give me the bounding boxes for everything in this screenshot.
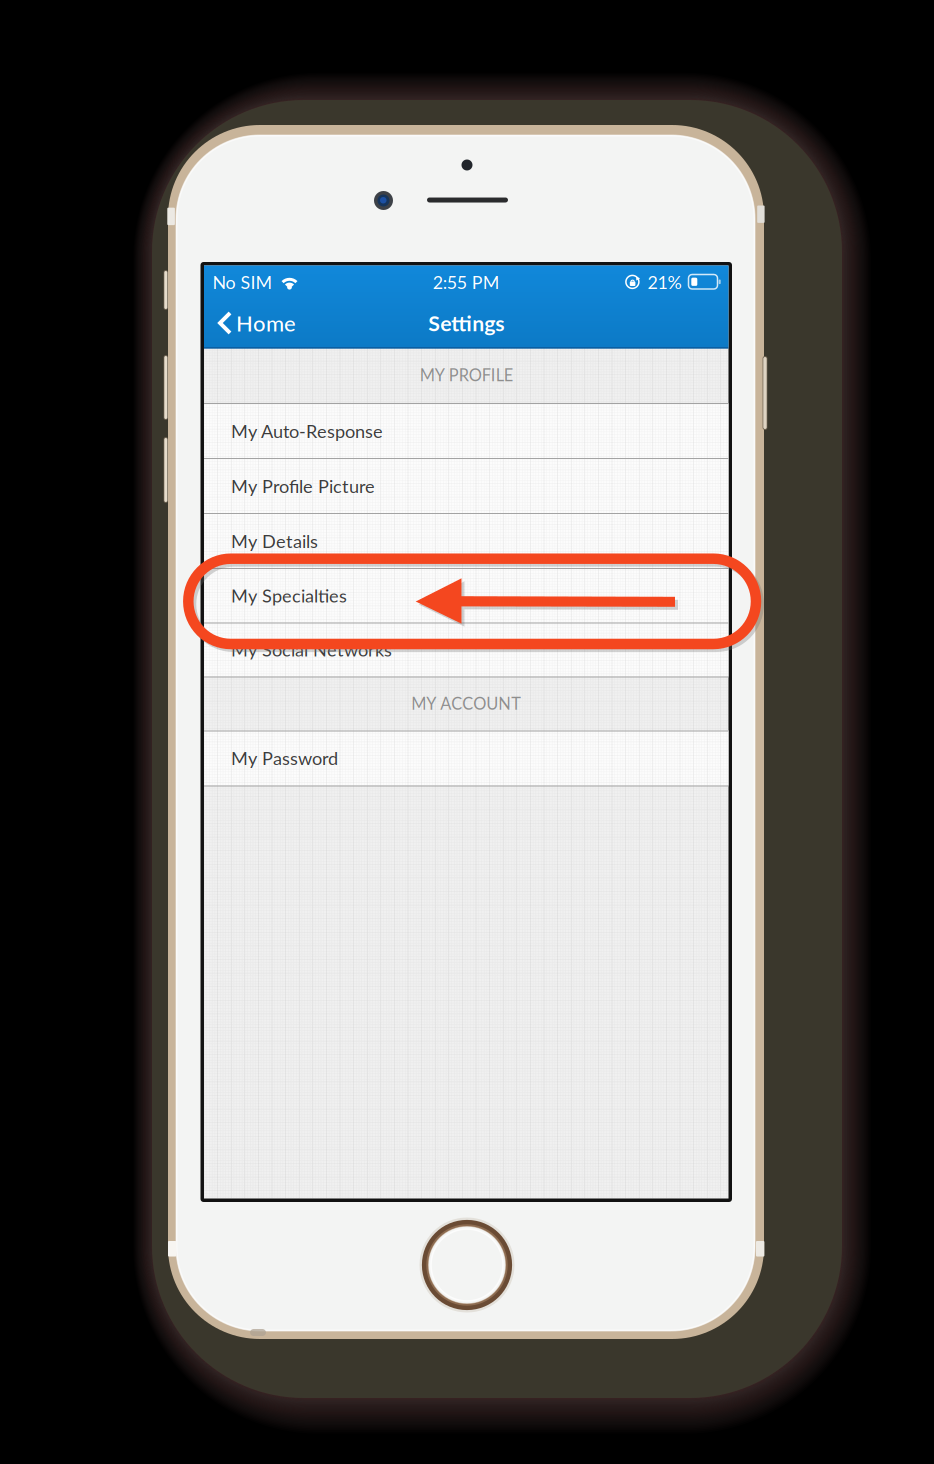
button[interactable]: My Details bbox=[204, 513, 728, 568]
staticText: My Password bbox=[231, 747, 338, 769]
staticText: My Details bbox=[231, 530, 318, 552]
staticText: Settings bbox=[428, 310, 504, 336]
staticText: 21% bbox=[647, 271, 681, 293]
button[interactable]: My Profile Picture bbox=[204, 458, 728, 513]
staticText: My Auto-Response bbox=[231, 420, 383, 442]
staticText: MY ACCOUNT bbox=[411, 694, 521, 713]
staticText: My Social Networks bbox=[231, 639, 392, 660]
staticText: My Specialties bbox=[231, 585, 347, 606]
staticText: MY PROFILE bbox=[420, 365, 513, 385]
button[interactable]: My Auto-Response bbox=[204, 403, 728, 458]
button[interactable]: My Social Networks bbox=[204, 622, 728, 677]
staticText: Home bbox=[236, 310, 296, 336]
button[interactable]: My Specialties bbox=[204, 568, 728, 623]
staticText: No SIM bbox=[212, 271, 272, 293]
button[interactable]: My Password bbox=[204, 730, 728, 785]
staticText: My Profile Picture bbox=[231, 475, 375, 497]
button[interactable]: Home bbox=[217, 299, 367, 346]
staticText: 2:55 PM bbox=[433, 271, 500, 293]
